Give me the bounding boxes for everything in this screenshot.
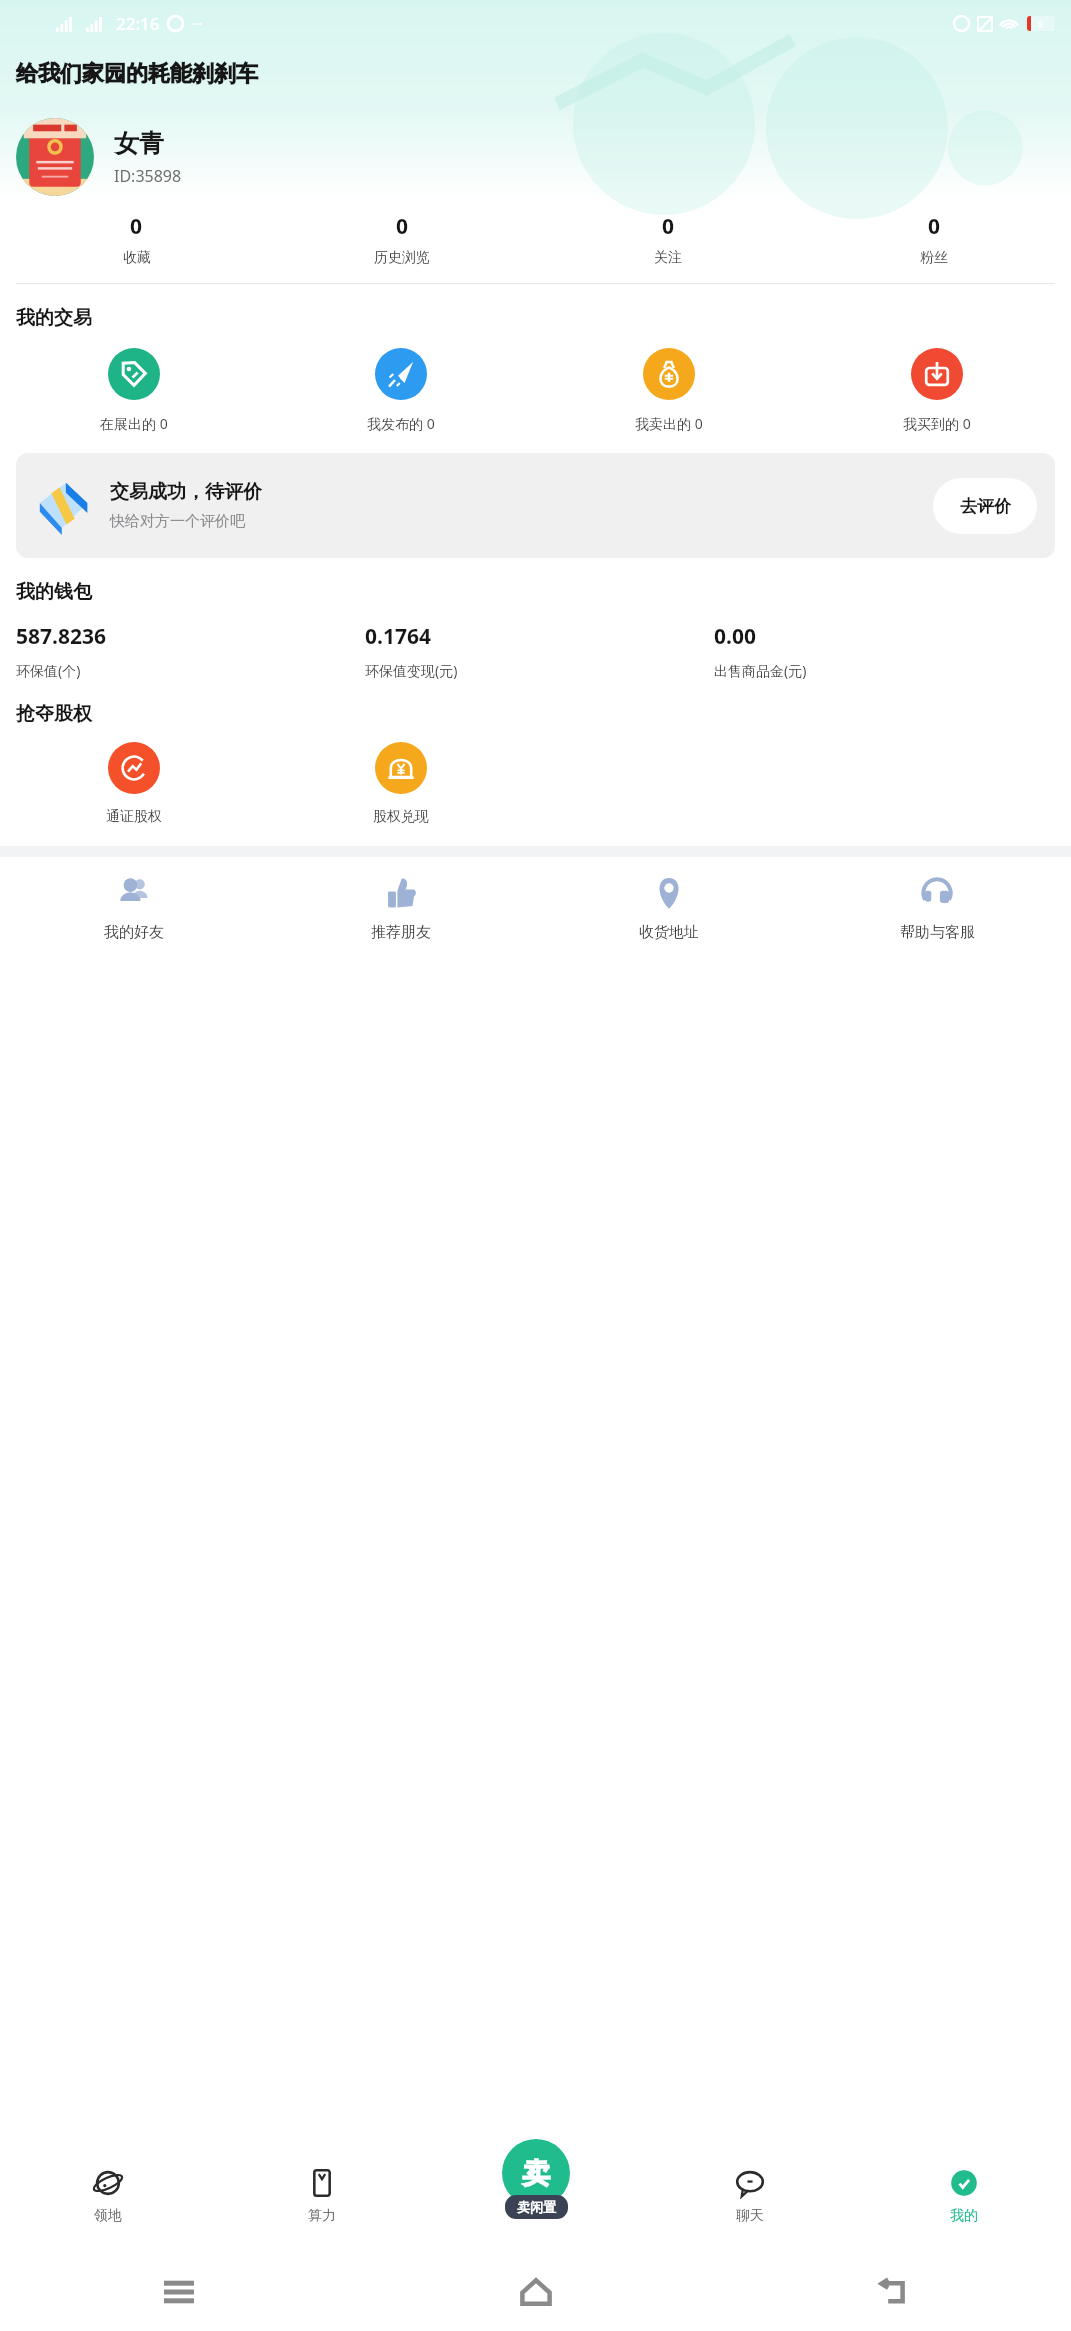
button[interactable]: 股权兑现 — [267, 740, 535, 828]
staticText: 收货地址 — [639, 923, 699, 942]
staticText: 交易成功，待评价 — [110, 480, 262, 504]
staticText: 通证股权 — [106, 808, 162, 826]
staticText: 587.8236 — [16, 622, 106, 651]
staticText: 我的好友 — [104, 923, 164, 942]
staticText: 环保值(个) — [16, 661, 81, 680]
button[interactable]: 聊天 — [643, 2157, 857, 2225]
staticText: 0 — [662, 212, 675, 241]
staticText: 算力 — [308, 2207, 336, 2225]
staticText: 0.00 — [714, 622, 756, 651]
staticText: 推荐朋友 — [371, 923, 431, 942]
staticText: 帮助与客服 — [900, 923, 975, 942]
staticText: 粉丝 — [920, 249, 948, 267]
button[interactable]: 0 — [801, 206, 1067, 273]
button[interactable]: 我的 — [857, 2157, 1071, 2225]
staticText: 股权兑现 — [373, 808, 429, 826]
staticText: 快给对方一个评价吧 — [110, 512, 245, 531]
staticText: 历史浏览 — [374, 249, 430, 267]
button[interactable]: 0.00 — [714, 622, 1063, 680]
staticText: 抢夺股权 — [16, 702, 92, 726]
button[interactable]: 通证股权 — [0, 740, 267, 828]
button[interactable]: Back — [714, 2253, 1071, 2331]
button[interactable]: 收货地址 — [535, 871, 803, 946]
button[interactable]: 0 — [4, 206, 269, 273]
button[interactable]: 我发布的 0 — [267, 346, 535, 435]
staticText: 出售商品金(元) — [714, 661, 807, 680]
staticText: 我的交易 — [16, 306, 92, 330]
staticText: 卖 — [522, 2156, 550, 2191]
button[interactable]: 0.1764 — [365, 622, 714, 680]
staticText: 去评价 — [960, 496, 1011, 517]
staticText: 0 — [396, 212, 409, 241]
staticText: 我发布的 0 — [367, 414, 435, 433]
staticText: 在展出的 0 — [100, 414, 168, 433]
staticText: 给我们家园的耗能刹刹车 — [16, 60, 258, 88]
staticText: 我的 — [950, 2207, 978, 2225]
staticText: 我的钱包 — [16, 580, 92, 604]
button[interactable]: 交易成功，待评价 — [16, 453, 1055, 558]
button[interactable]: 女青 — [16, 118, 1071, 196]
button[interactable]: 0 — [535, 206, 801, 273]
button[interactable]: 我的好友 — [0, 871, 267, 946]
staticText: 22:16 — [116, 12, 160, 35]
staticText: 我卖出的 0 — [635, 414, 703, 433]
button[interactable]: 我买到的 0 — [803, 346, 1071, 435]
staticText: 卖闲置 — [517, 2199, 556, 2215]
button[interactable]: Home — [357, 2253, 714, 2331]
button[interactable]: 卖 — [502, 2139, 570, 2231]
staticText: 关注 — [654, 249, 682, 267]
button[interactable]: 帮助与客服 — [803, 871, 1071, 946]
button[interactable]: 推荐朋友 — [267, 871, 535, 946]
staticText: 环保值变现(元) — [365, 661, 458, 680]
staticText: 聊天 — [736, 2207, 764, 2225]
staticText: 收藏 — [123, 249, 151, 267]
button[interactable]: 0 — [269, 206, 535, 273]
button[interactable]: 587.8236 — [16, 622, 365, 680]
button[interactable]: Recent apps — [0, 2253, 357, 2331]
staticText: 领地 — [94, 2207, 122, 2225]
staticText: 我买到的 0 — [903, 414, 971, 433]
staticText: 0 — [130, 212, 143, 241]
button[interactable]: 领地 — [0, 2157, 215, 2225]
button[interactable]: 我卖出的 0 — [535, 346, 803, 435]
button[interactable]: 算力 — [215, 2157, 429, 2225]
staticText: ··· — [191, 14, 203, 33]
staticText: 0 — [928, 212, 941, 241]
button[interactable]: 去评价 — [933, 478, 1037, 534]
staticText: ID:35898 — [114, 165, 182, 187]
staticText: 8 — [1038, 18, 1044, 30]
button[interactable]: 在展出的 0 — [0, 346, 267, 435]
staticText: 女青 — [114, 128, 164, 159]
staticText: 0.1764 — [365, 622, 431, 651]
